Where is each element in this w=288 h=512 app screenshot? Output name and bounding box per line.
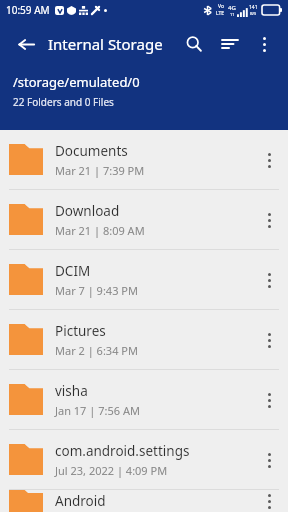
button[interactable]: Item options for visha — [254, 385, 284, 415]
button[interactable]: DCIM — [0, 250, 288, 309]
staticText: LTE — [216, 10, 225, 17]
staticText: 11 — [230, 12, 235, 17]
button[interactable]: Back — [12, 30, 40, 58]
button[interactable]: Item options for com.android.settings — [254, 445, 284, 475]
staticText: Mar 2 | 6:34 PM — [55, 343, 138, 358]
staticText: B/S — [250, 11, 257, 16]
button[interactable]: visha — [0, 370, 288, 429]
staticText: /storage/emulated/0 — [13, 73, 140, 91]
button[interactable]: Pictures — [0, 310, 288, 369]
staticText: 10:59 AM — [6, 3, 50, 17]
staticText: Mar 21 | 7:39 PM — [55, 163, 145, 178]
staticText: Vo — [218, 3, 224, 10]
staticText: 4G — [228, 4, 236, 12]
staticText: com.android.settings — [55, 442, 190, 460]
button[interactable]: Search — [178, 28, 210, 60]
staticText: Internal Storage — [48, 34, 163, 54]
staticText: Pictures — [55, 322, 106, 340]
staticText: visha — [55, 382, 88, 400]
staticText: Jul 23, 2022 | 4:09 PM — [55, 463, 168, 478]
button[interactable]: Item options for Android — [254, 490, 284, 512]
staticText: 22 Folders and 0 Files — [13, 95, 114, 109]
button[interactable]: Download — [0, 190, 288, 249]
staticText: Jan 17 | 7:56 AM — [55, 403, 140, 418]
button[interactable]: Item options for DCIM — [254, 265, 284, 295]
button[interactable]: Item options for Documents — [254, 145, 284, 175]
staticText: Mar 7 | 9:43 PM — [55, 283, 138, 298]
button[interactable]: More options — [248, 28, 280, 60]
staticText: Android — [55, 492, 106, 510]
button[interactable]: Sort — [214, 28, 246, 60]
staticText: Download — [55, 202, 120, 220]
button[interactable]: com.android.settings — [0, 430, 288, 489]
staticText: Documents — [55, 142, 128, 160]
staticText: DCIM — [55, 262, 91, 280]
staticText: 141 — [249, 4, 258, 11]
button[interactable]: Documents — [0, 130, 288, 189]
staticText: Mar 21 | 8:09 AM — [55, 223, 145, 238]
button[interactable]: Item options for Download — [254, 205, 284, 235]
button[interactable]: Item options for Pictures — [254, 325, 284, 355]
button[interactable]: Android — [0, 490, 288, 512]
